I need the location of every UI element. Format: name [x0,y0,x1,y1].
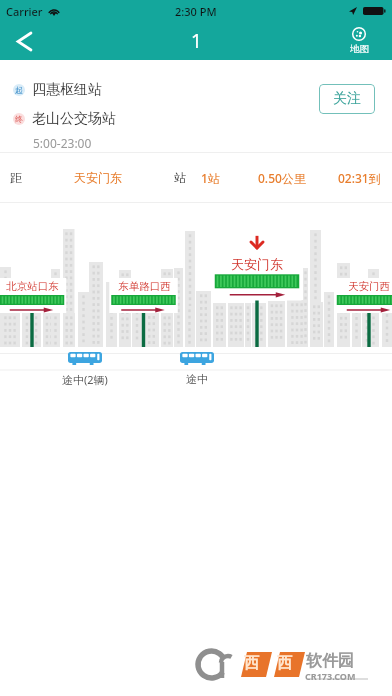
button[interactable]: 地图 [337,22,381,60]
staticText: 1 [191,28,202,54]
staticText: 北京站口东 [6,280,59,293]
staticText: 软件园 [306,651,354,671]
staticText: 地图 [350,43,369,55]
staticText: CR173.COM [305,670,356,682]
staticText: 距 [10,170,22,185]
staticText: 2:30 PM [175,4,217,19]
button[interactable]: Back [0,22,48,60]
staticText: 四惠枢纽站 [32,81,102,99]
staticText: 途中(2辆) [62,372,108,387]
other: Current stop [250,235,264,249]
staticText: 5:00-23:00 [33,135,92,151]
staticText: 站 [174,170,186,185]
staticText: 西 [277,654,292,673]
staticText: 老山公交场站 [32,110,116,128]
staticText: 天安门西 [348,280,390,293]
staticText: 1站 [201,170,220,186]
staticText: 天安门东 [231,256,283,272]
staticText: 起 [15,85,23,95]
button[interactable]: 关注 [319,84,375,114]
staticText: 02:31到 [338,170,381,186]
staticText: 关注 [333,90,361,108]
staticText: 天安门东 [74,170,122,185]
staticText: Carrier [6,4,43,19]
staticText: 途中 [186,372,208,386]
staticText: 东单路口西 [118,280,171,293]
staticText: 终 [15,114,23,124]
staticText: 西 [244,654,259,673]
staticText: 0.50公里 [258,170,306,186]
